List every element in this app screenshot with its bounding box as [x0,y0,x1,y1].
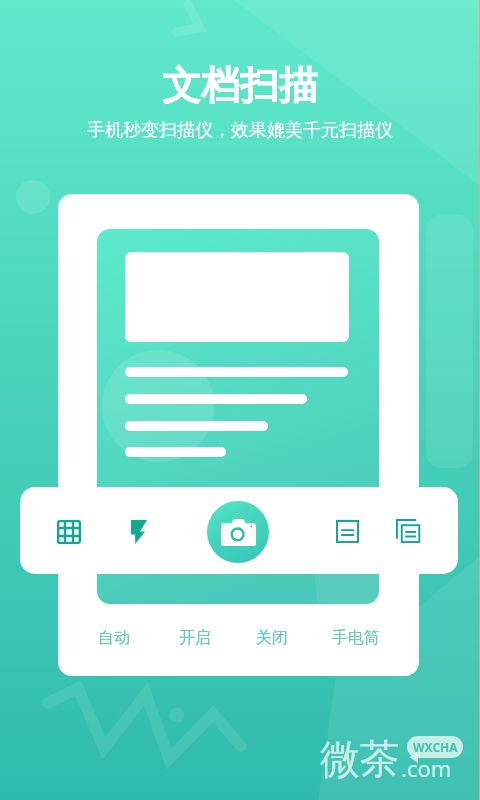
staticText: 关闭 [256,628,288,648]
staticText: .com [401,753,452,783]
button[interactable]: Multiple documents [386,509,430,554]
button[interactable]: 手电筒 [325,623,387,653]
button[interactable]: Single document [326,510,369,554]
button[interactable]: Flash [121,510,157,554]
staticText: 文档扫描 [162,61,318,110]
button[interactable]: 开启 [164,623,226,653]
button[interactable]: 关闭 [241,623,303,653]
staticText: 微茶 [320,734,400,784]
staticText: 自动 [98,628,130,648]
staticText: 手电筒 [332,628,380,648]
staticText: 开启 [179,628,211,648]
staticText: 手机秒变扫描仪，效果媲美千元扫描仪 [87,119,393,142]
button[interactable]: Grid [47,510,91,554]
staticText: WXCHA [413,739,458,755]
button[interactable]: Capture [207,501,269,563]
button[interactable]: 自动 [83,623,145,653]
